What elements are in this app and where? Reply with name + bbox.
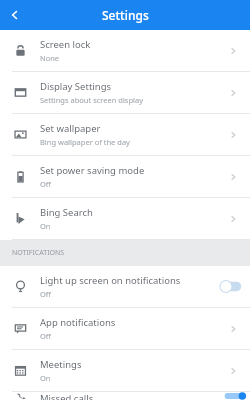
button[interactable]: Missed calls — [0, 392, 250, 400]
staticText: Settings about screen display — [40, 95, 144, 105]
staticText: Off — [40, 331, 52, 341]
button[interactable]: Screen lock — [0, 30, 250, 71]
button[interactable]: Back — [0, 0, 30, 30]
staticText: Light up screen on notifications — [40, 274, 181, 287]
staticText: Off — [40, 289, 52, 299]
staticText: On — [40, 221, 51, 231]
staticText: On — [40, 373, 51, 383]
staticText: Missed calls — [40, 392, 94, 400]
staticText: Bing wallpaper of the day — [40, 137, 130, 147]
staticText: App notifications — [40, 316, 116, 329]
staticText: Off — [40, 179, 52, 189]
button[interactable]: Toggle on — [220, 392, 246, 400]
button[interactable]: Meetings — [0, 350, 250, 391]
staticText: Settings — [102, 7, 149, 23]
staticText: Set wallpaper — [40, 122, 101, 135]
staticText: Bing Search — [40, 206, 93, 219]
staticText: Meetings — [40, 358, 82, 371]
staticText: Set power saving mode — [40, 164, 145, 177]
button[interactable]: Bing Search — [0, 198, 250, 239]
button[interactable]: Toggle off — [220, 280, 246, 293]
staticText: NOTIFICATIONS — [12, 248, 65, 258]
button[interactable]: App notifications — [0, 308, 250, 349]
button[interactable]: Light up screen on notifications — [0, 266, 250, 307]
staticText: Display Settings — [40, 80, 112, 93]
staticText: None — [40, 53, 60, 63]
button[interactable]: Set wallpaper — [0, 114, 250, 155]
staticText: Screen lock — [40, 38, 91, 51]
button[interactable]: Set power saving mode — [0, 156, 250, 197]
button[interactable]: Display Settings — [0, 72, 250, 113]
